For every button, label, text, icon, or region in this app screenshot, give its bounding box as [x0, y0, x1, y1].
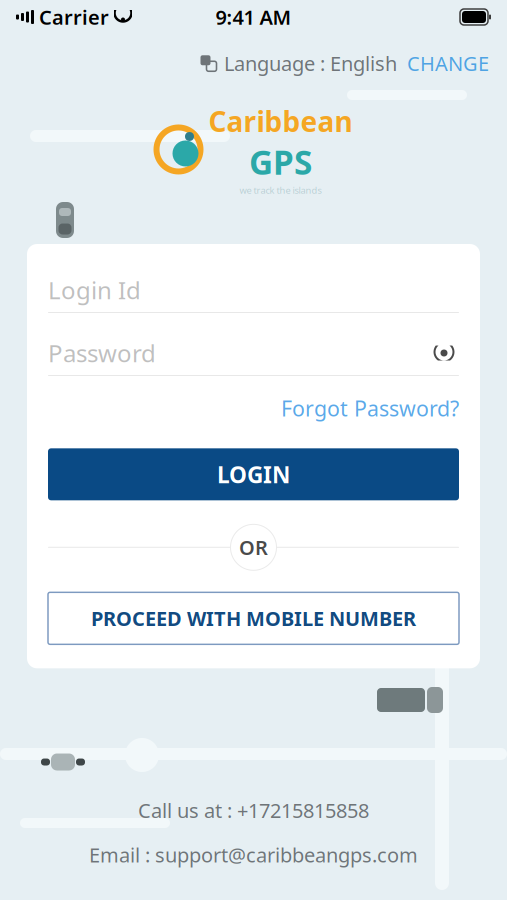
staticText: 9:41 AM	[215, 4, 291, 30]
staticText: Carrier	[39, 4, 109, 30]
button[interactable]: PROCEED WITH MOBILE NUMBER	[48, 592, 459, 644]
staticText: Call us at : +17215815858	[138, 797, 369, 823]
staticText: OR	[239, 534, 268, 561]
staticText: we track the islands	[239, 184, 321, 196]
staticText: CHANGE	[407, 50, 489, 77]
staticText: Login Id	[48, 274, 141, 306]
staticText: Email : support@caribbeangps.com	[89, 841, 418, 868]
button[interactable]: CHANGE	[397, 46, 489, 81]
staticText: Password	[48, 337, 156, 369]
staticText: PROCEED WITH MOBILE NUMBER	[91, 605, 416, 632]
staticText: Language : English	[224, 50, 397, 77]
button[interactable]: Show password	[429, 339, 459, 366]
staticText: Forgot Password?	[281, 394, 459, 422]
button[interactable]: Forgot Password?	[281, 388, 459, 428]
button[interactable]: Language : English	[200, 50, 397, 77]
staticText: GPS	[249, 140, 312, 184]
staticText: LOGIN	[217, 459, 290, 489]
button[interactable]: LOGIN	[48, 448, 459, 500]
staticText: Caribbean	[208, 103, 352, 140]
